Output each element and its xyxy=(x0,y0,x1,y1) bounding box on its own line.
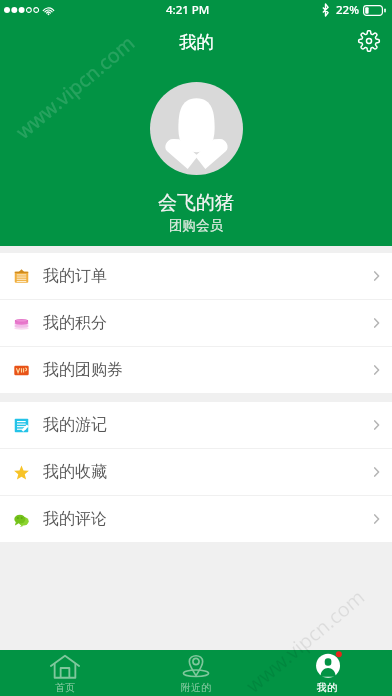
staticText: 我的订单 xyxy=(43,266,107,286)
staticText: 我的团购券 xyxy=(43,360,123,380)
staticText: 22% xyxy=(336,2,359,18)
button[interactable]: 我的订单 xyxy=(0,253,392,299)
button[interactable]: 附近的 xyxy=(130,650,261,696)
button[interactable]: Settings xyxy=(354,26,384,56)
staticText: 我的收藏 xyxy=(43,462,107,482)
staticText: 我的 xyxy=(317,681,337,694)
button[interactable]: 我的团购券 xyxy=(0,347,392,393)
staticText: 4:21 PM xyxy=(166,2,210,18)
staticText: 我的游记 xyxy=(43,415,107,435)
staticText: 我的 xyxy=(179,31,214,53)
staticText: 附近的 xyxy=(181,681,211,694)
button[interactable]: 我的评论 xyxy=(0,496,392,542)
button[interactable]: 我的积分 xyxy=(0,300,392,346)
button[interactable]: 我的 xyxy=(261,650,392,696)
button[interactable]: 我的收藏 xyxy=(0,449,392,495)
staticText: 首页 xyxy=(55,681,75,694)
staticText: 团购会员 xyxy=(169,217,223,234)
staticText: 会飞的猪 xyxy=(158,191,234,215)
staticText: 我的评论 xyxy=(43,509,107,529)
staticText: 我的积分 xyxy=(43,313,107,333)
button[interactable]: 首页 xyxy=(0,650,130,696)
button[interactable]: 我的游记 xyxy=(0,402,392,448)
